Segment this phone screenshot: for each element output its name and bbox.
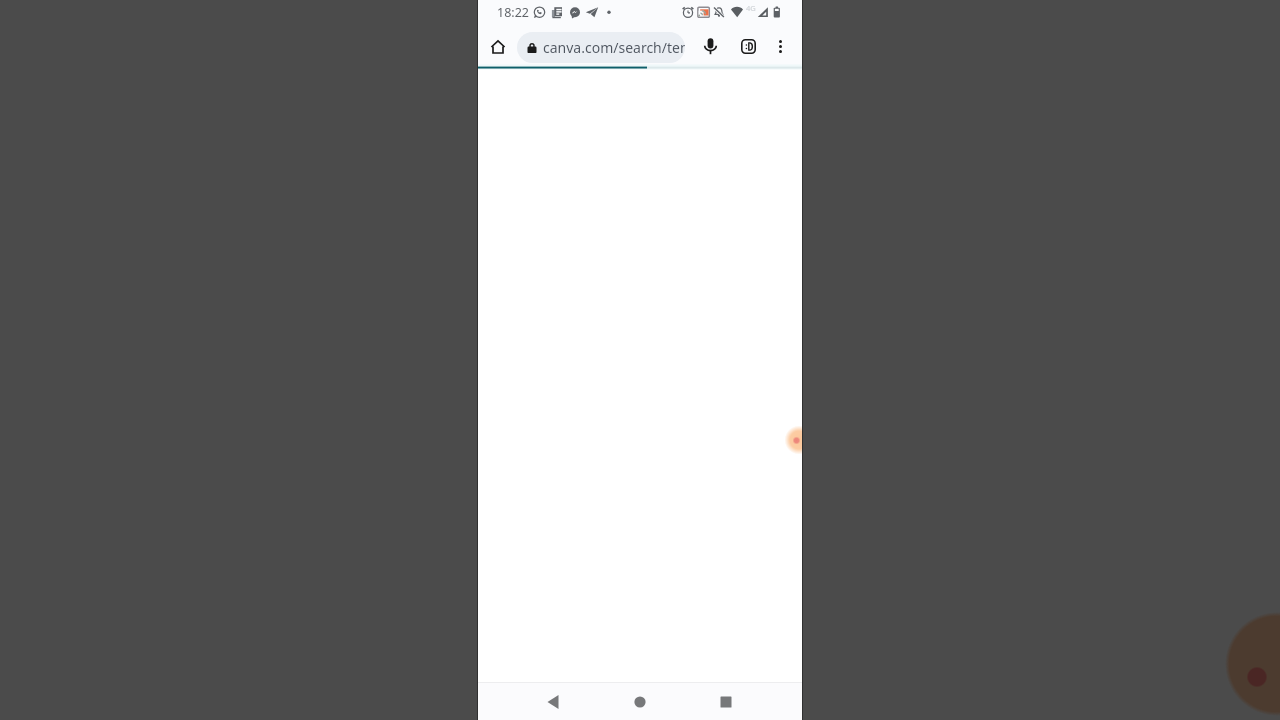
button[interactable]: More options <box>764 30 797 63</box>
button[interactable]: Back <box>535 684 571 720</box>
staticText: canva.com/search/templates <box>543 38 685 57</box>
button[interactable]: canva.com/search/templates <box>517 32 685 63</box>
staticText: 4G <box>746 3 756 13</box>
button[interactable]: Recent apps <box>708 684 744 720</box>
button[interactable]: Home <box>622 684 658 720</box>
button[interactable]: Home <box>481 30 514 63</box>
button[interactable]: Switch tabs <box>732 30 765 63</box>
staticText: 18:22 <box>497 4 529 21</box>
button[interactable]: Voice search <box>694 30 727 63</box>
